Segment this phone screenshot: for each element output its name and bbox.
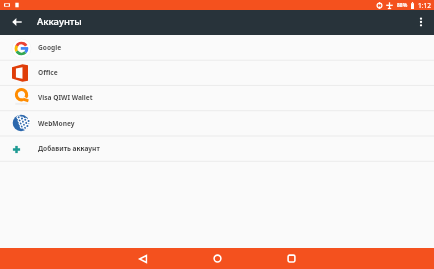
- button[interactable]: Back: [7, 12, 27, 32]
- button[interactable]: Добавить аккаунт: [0, 136, 434, 161]
- staticText: 1:12: [418, 1, 432, 10]
- button[interactable]: WebMoney: [0, 111, 434, 136]
- staticText: Office: [38, 68, 58, 77]
- button[interactable]: Recents: [254, 248, 328, 269]
- staticText: Google: [38, 43, 62, 52]
- staticText: Добавить аккаунт: [38, 144, 100, 153]
- staticText: Visa QIWI Wallet: [38, 93, 93, 102]
- button[interactable]: Google: [0, 35, 434, 60]
- staticText: 88%: [397, 2, 408, 9]
- button[interactable]: Back: [106, 248, 180, 269]
- button[interactable]: Office: [0, 60, 434, 85]
- button[interactable]: Home: [180, 248, 254, 269]
- staticText: WebMoney: [38, 119, 75, 128]
- button[interactable]: More options: [411, 12, 431, 32]
- button[interactable]: Visa QIWI Wallet: [0, 85, 434, 110]
- staticText: Аккаунты: [37, 15, 82, 28]
